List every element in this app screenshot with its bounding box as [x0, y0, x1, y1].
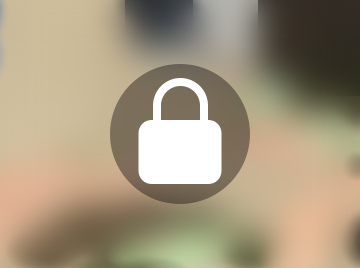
- button[interactable]: Content locked: [110, 64, 250, 204]
